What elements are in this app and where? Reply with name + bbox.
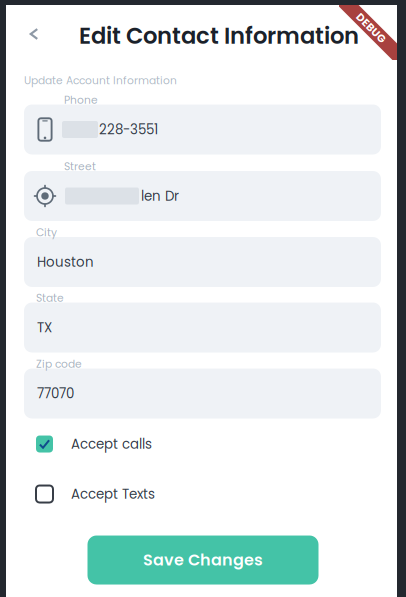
staticText: Update Account Information bbox=[24, 73, 177, 88]
staticText: Edit Contact Information bbox=[79, 20, 359, 52]
staticText: TX bbox=[37, 318, 52, 337]
staticText: Accept calls bbox=[71, 435, 152, 453]
staticText: Zip code bbox=[36, 356, 82, 371]
staticText: Houston bbox=[37, 253, 94, 271]
staticText: 228-3551 bbox=[99, 120, 158, 139]
button[interactable]: Save Changes bbox=[87, 535, 318, 584]
staticText: State bbox=[36, 290, 64, 305]
button[interactable]: Accept Texts bbox=[36, 481, 216, 507]
staticText: Street bbox=[64, 159, 96, 174]
staticText: Phone bbox=[64, 92, 98, 107]
staticText: Accept Texts bbox=[71, 485, 155, 503]
staticText: 77070 bbox=[37, 384, 74, 403]
button[interactable]: Back bbox=[19, 19, 49, 49]
staticText: Save Changes bbox=[143, 549, 263, 571]
staticText: City bbox=[36, 225, 57, 240]
staticText: DEBUG bbox=[352, 20, 389, 35]
staticText: len Dr bbox=[141, 187, 179, 205]
button[interactable]: Accept calls bbox=[36, 431, 216, 457]
